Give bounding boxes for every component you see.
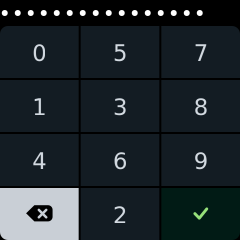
button[interactable]: 4 <box>0 134 79 186</box>
button[interactable]: Delete <box>0 188 79 240</box>
staticText: 5 <box>113 40 127 67</box>
staticText: 1 <box>32 94 46 121</box>
button[interactable]: 2 <box>81 188 159 240</box>
staticText: 9 <box>194 148 208 175</box>
staticText: 3 <box>113 94 127 121</box>
button[interactable]: 1 <box>0 80 79 132</box>
button[interactable]: 3 <box>81 80 159 132</box>
staticText: 0 <box>32 40 46 67</box>
button[interactable]: 5 <box>81 26 159 78</box>
button[interactable]: 8 <box>161 80 240 132</box>
staticText: 8 <box>194 94 208 121</box>
button[interactable]: 7 <box>161 26 240 78</box>
staticText: 6 <box>113 148 127 175</box>
staticText: 4 <box>32 148 46 175</box>
button[interactable]: 0 <box>0 26 79 78</box>
staticText: 2 <box>113 202 127 229</box>
button[interactable]: 9 <box>161 134 240 186</box>
button[interactable]: Confirm <box>161 188 240 240</box>
staticText: 7 <box>194 40 208 67</box>
button[interactable]: 6 <box>81 134 159 186</box>
